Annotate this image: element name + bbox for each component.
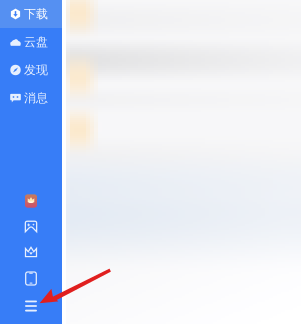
staticText: 发现 bbox=[24, 62, 48, 77]
button[interactable]: Hot bbox=[0, 188, 62, 214]
button[interactable]: 消息 bbox=[0, 84, 62, 112]
staticText: 云盘 bbox=[24, 34, 48, 49]
button[interactable]: 下载 bbox=[0, 0, 62, 28]
button[interactable]: 发现 bbox=[0, 56, 62, 84]
button[interactable]: Photos bbox=[0, 214, 62, 239]
button[interactable]: 云盘 bbox=[0, 28, 62, 56]
button[interactable]: Menu bbox=[0, 292, 62, 320]
button[interactable]: VIP bbox=[0, 239, 62, 265]
staticText: 下载 bbox=[24, 6, 48, 21]
button[interactable]: Mobile app bbox=[0, 265, 62, 292]
staticText: 消息 bbox=[24, 90, 48, 105]
